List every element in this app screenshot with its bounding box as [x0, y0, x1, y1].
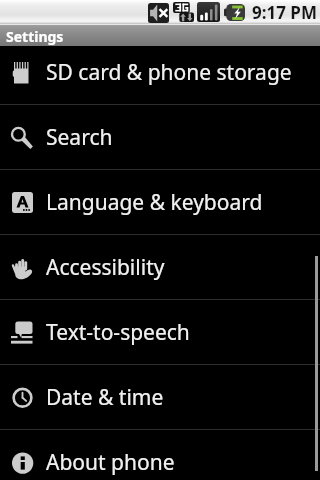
button[interactable]: Text-to-speech — [0, 300, 320, 364]
button[interactable]: Language & keyboard — [0, 170, 320, 234]
staticText: Language & keyboard — [46, 188, 263, 217]
staticText: 9:17 PM — [252, 1, 317, 24]
staticText: Date & time — [46, 383, 164, 412]
button[interactable]: Accessibility — [0, 235, 320, 299]
button[interactable]: About phone — [0, 430, 320, 480]
button[interactable]: Date & time — [0, 365, 320, 429]
staticText: Search — [46, 123, 113, 152]
staticText: Text-to-speech — [46, 318, 190, 347]
staticText: Accessibility — [46, 253, 165, 282]
staticText: Settings — [6, 27, 64, 46]
staticText: SD card & phone storage — [46, 58, 292, 87]
button[interactable]: SD card & phone storage — [0, 40, 320, 104]
button[interactable]: Search — [0, 105, 320, 169]
staticText: About phone — [46, 448, 175, 477]
